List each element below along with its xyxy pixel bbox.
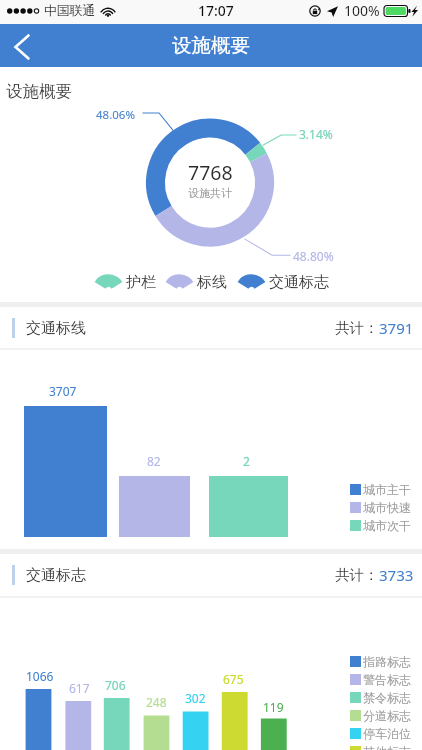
staticText: 617 [69,680,90,696]
button[interactable]: 停车泊位 [350,724,411,742]
button[interactable]: 指路标志 [350,652,411,670]
button[interactable]: 交通标志 [237,273,329,292]
staticText: 7768 [188,159,233,186]
staticText: 302 [185,690,206,706]
staticText: 119 [263,699,284,715]
button[interactable]: 其他标志 [350,742,411,750]
staticText: 100% [344,1,380,20]
button[interactable]: 城市主干 [350,480,411,498]
staticText: 设施共计 [188,186,232,200]
staticText: 停车泊位 [363,726,411,741]
staticText: 交通标线 [26,319,86,338]
staticText: 分道标志 [363,708,411,723]
button[interactable]: 警告标志 [350,670,411,688]
button[interactable]: Back [0,24,44,67]
staticText: 禁令标志 [363,690,411,705]
staticText: 3.14% [299,126,333,142]
staticText: 48.80% [293,248,334,264]
staticText: 标线 [197,273,227,292]
button[interactable]: 交通标志 [0,554,422,596]
staticText: 指路标志 [363,654,411,669]
staticText: 共计： [335,319,379,337]
staticText: 城市快速 [363,500,411,515]
button[interactable]: 城市次干 [350,516,411,534]
staticText: 设施概要 [172,33,250,58]
staticText: 中国联通 [44,3,96,19]
button[interactable]: 护栏 [94,273,156,292]
staticText: 248 [146,694,167,710]
button[interactable]: 禁令标志 [350,688,411,706]
button[interactable]: 交通标线 [0,307,422,349]
staticText: 1066 [26,668,54,684]
staticText: 2 [243,453,250,469]
staticText: 城市主干 [363,482,411,497]
staticText: 3707 [49,383,77,399]
button[interactable]: 分道标志 [350,706,411,724]
staticText: 城市次干 [363,518,411,533]
staticText: 17:07 [198,1,234,20]
staticText: 共计： [335,566,379,584]
staticText: 48.06% [96,107,135,123]
staticText: 护栏 [126,273,156,292]
staticText: 警告标志 [363,672,411,687]
staticText: 交通标志 [26,566,86,585]
staticText: 设施概要 [6,81,72,102]
button[interactable]: 城市快速 [350,498,411,516]
staticText: 675 [223,671,244,687]
staticText: 82 [147,453,161,469]
staticText: 其他标志 [363,744,411,750]
staticText: 交通标志 [269,273,329,292]
staticText: 3733 [379,565,414,585]
button[interactable]: 标线 [165,273,227,292]
staticText: 3791 [379,318,414,338]
staticText: 706 [105,677,126,693]
